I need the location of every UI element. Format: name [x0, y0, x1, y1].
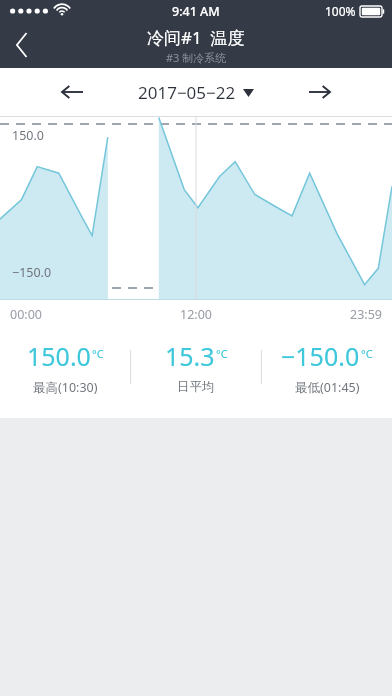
staticText: 冷间#1 温度: [147, 26, 245, 49]
staticText: 150.0: [12, 127, 44, 144]
staticText: #3 制冷系统: [166, 50, 227, 65]
staticText: 15.3: [165, 339, 215, 373]
staticText: 23:59: [258, 306, 382, 323]
button[interactable]: −150.0: [262, 328, 392, 406]
staticText: 2017−05−22: [138, 81, 236, 104]
staticText: 日平均: [177, 379, 215, 395]
staticText: 100%: [325, 3, 356, 19]
button[interactable]: Back: [0, 22, 46, 68]
staticText: 150.0: [27, 339, 91, 373]
staticText: °C: [92, 346, 104, 361]
staticText: 最低(01:45): [295, 379, 360, 396]
staticText: −150.0: [12, 264, 52, 281]
staticText: °C: [361, 346, 373, 361]
staticText: 12:00: [134, 306, 258, 323]
staticText: 最高(10:30): [33, 379, 98, 396]
staticText: 00:00: [10, 306, 134, 323]
staticText: −150.0: [281, 339, 360, 373]
button[interactable]: Previous day: [50, 70, 94, 114]
button[interactable]: Next day: [298, 70, 342, 114]
button[interactable]: 150.0: [0, 328, 130, 406]
button[interactable]: 2017−05−22: [138, 81, 254, 104]
staticText: 9:41 AM: [172, 3, 220, 20]
button[interactable]: 15.3: [131, 328, 261, 406]
staticText: °C: [216, 346, 228, 361]
